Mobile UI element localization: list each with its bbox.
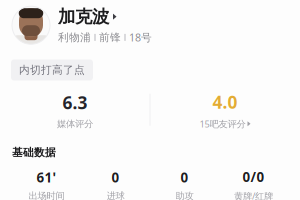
staticText: 内切打高了点	[19, 63, 85, 77]
staticText: 4.0	[212, 91, 237, 114]
staticText: 媒体评分	[57, 118, 93, 129]
staticText: 0	[111, 168, 119, 186]
staticText: 利物浦	[58, 31, 91, 44]
staticText: 加克波	[58, 6, 109, 27]
staticText: 前锋	[99, 31, 121, 44]
staticText: 进球	[106, 190, 124, 200]
staticText: 黄牌/红牌	[234, 190, 273, 200]
button[interactable]: 15吧友评分	[199, 118, 250, 130]
button[interactable]: 加克波	[0, 0, 300, 44]
staticText: 6.3	[62, 91, 87, 114]
staticText: 基础数据	[12, 146, 56, 159]
staticText: 0	[180, 168, 188, 186]
staticText: 助攻	[175, 190, 193, 200]
staticText: 出场时间	[28, 190, 64, 200]
staticText: 61'	[36, 168, 56, 186]
staticText: 0/0	[242, 168, 264, 186]
staticText: 18号	[129, 30, 152, 44]
staticText: 15吧友评分	[199, 118, 245, 130]
